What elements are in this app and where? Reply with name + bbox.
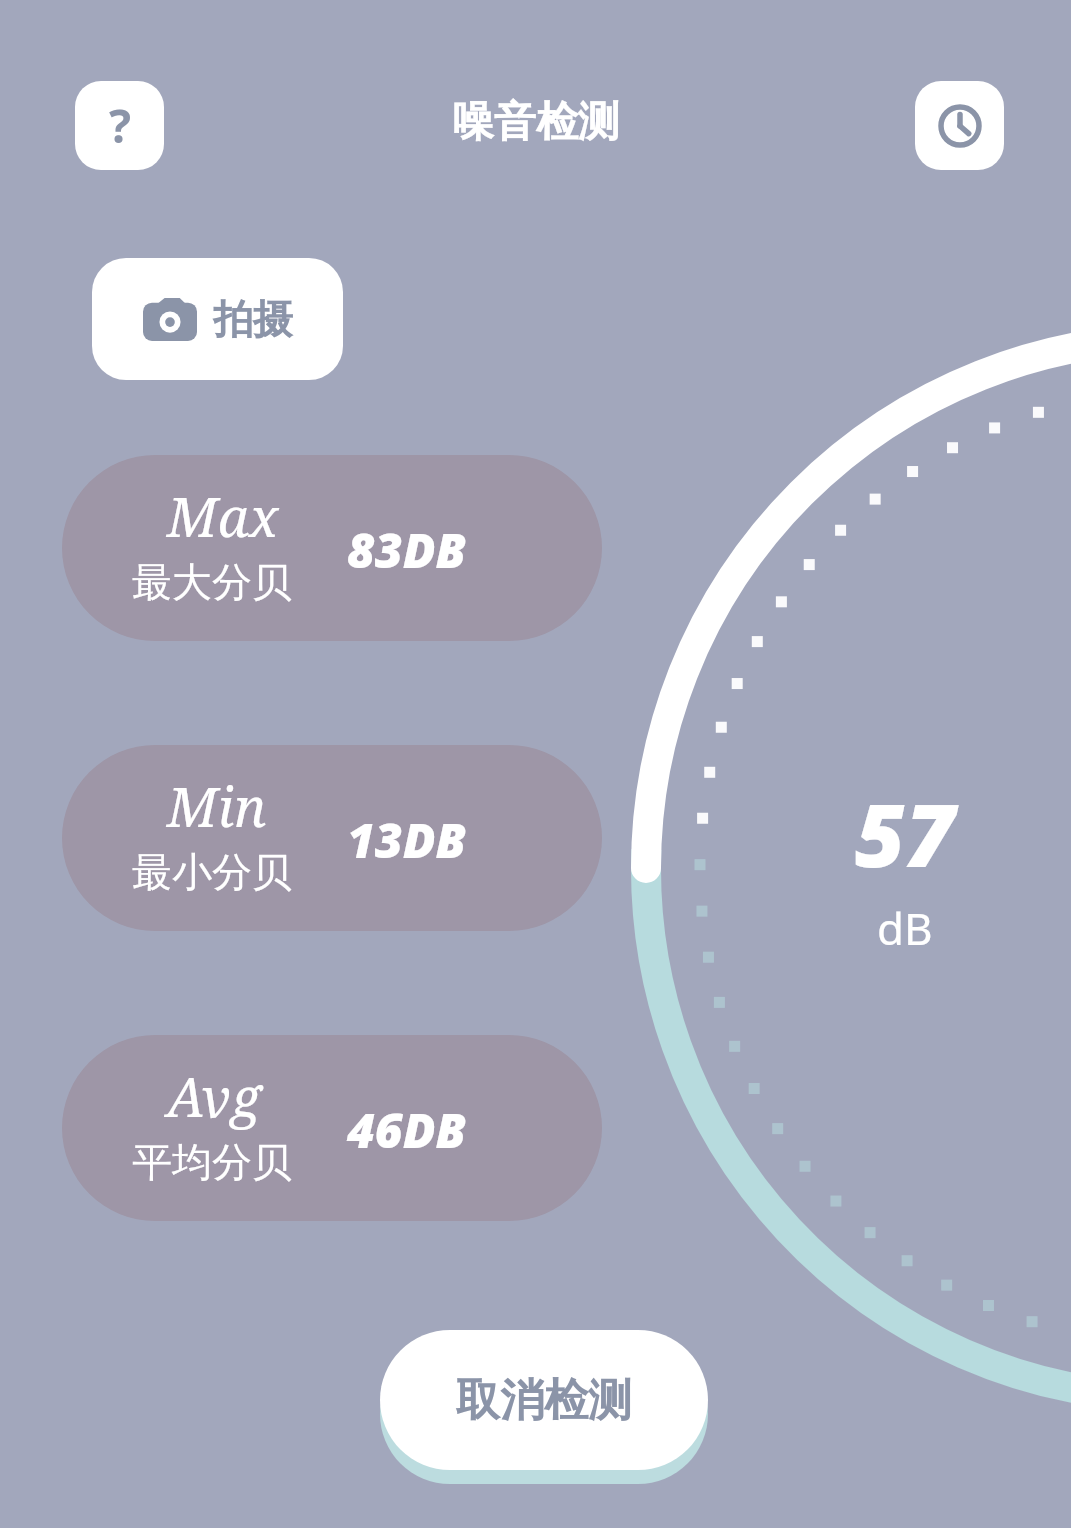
staticText: 噪音检测 [452,96,620,149]
button[interactable]: Max [62,455,602,641]
button[interactable]: 取消检测 [380,1330,708,1470]
staticText: 57 [855,775,955,892]
staticText: 取消检测 [456,1373,632,1428]
staticText: dB [877,898,933,958]
staticText: Min [167,769,267,843]
staticText: 83DB [347,517,466,582]
staticText: 13DB [347,807,466,872]
button[interactable]: History [915,81,1004,170]
staticText: Avg [167,1059,261,1133]
staticText: Max [167,479,279,553]
button[interactable]: 拍摄 [92,258,343,380]
staticText: 46DB [347,1097,466,1162]
staticText: 拍摄 [213,294,293,344]
button[interactable]: Help [75,81,164,170]
staticText: 最小分贝 [132,847,292,897]
staticText: 最大分贝 [132,557,292,607]
staticText: ? [109,94,131,157]
staticText: 平均分贝 [132,1137,292,1187]
button[interactable]: Avg [62,1035,602,1221]
button[interactable]: Min [62,745,602,931]
